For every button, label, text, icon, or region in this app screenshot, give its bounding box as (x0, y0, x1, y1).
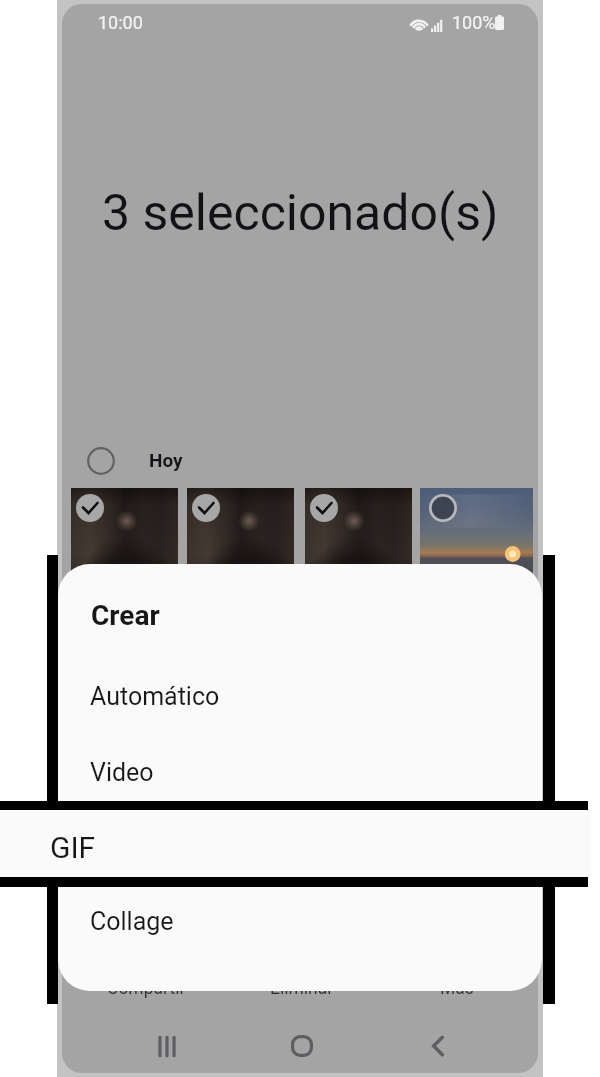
staticText: Collage (90, 907, 174, 936)
button[interactable]: Back (416, 1024, 460, 1068)
button[interactable]: Hoy (87, 447, 183, 475)
staticText: GIF (50, 830, 96, 865)
staticText: 3 seleccionado(s) (102, 184, 499, 243)
staticText: 10:00 (98, 12, 143, 33)
staticText: 100% (452, 12, 496, 33)
staticText: Video (90, 758, 154, 787)
staticText: Automático (90, 682, 220, 711)
button[interactable]: Automático (58, 661, 542, 731)
staticText: GIF (90, 834, 128, 863)
staticText: Más (440, 978, 474, 999)
button[interactable]: GIF (0, 801, 588, 887)
button[interactable] (305, 488, 412, 598)
button[interactable]: Compartir (84, 973, 208, 1003)
button[interactable]: Collage (58, 886, 542, 956)
button[interactable] (71, 488, 178, 598)
button[interactable]: Eliminar (240, 973, 364, 1003)
button[interactable]: Más (395, 973, 519, 1003)
staticText: Compartir (107, 978, 186, 999)
button[interactable]: Recents (145, 1024, 189, 1068)
staticText: Eliminar (270, 978, 334, 999)
button[interactable]: GIF (58, 813, 542, 883)
button[interactable] (420, 488, 533, 598)
staticText: Hoy (149, 449, 183, 471)
button[interactable]: Video (58, 737, 542, 807)
staticText: Crear (91, 599, 160, 632)
button[interactable] (187, 488, 294, 598)
button[interactable]: Home (280, 1024, 324, 1068)
